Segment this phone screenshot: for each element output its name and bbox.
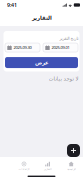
button[interactable]: 2025-09-30 <box>5 43 40 52</box>
button[interactable]: الرئيسية <box>59 159 83 173</box>
staticText: 9:41 <box>7 1 17 9</box>
staticText: لا توجد بيانات <box>48 75 78 82</box>
staticText: 2025-09-01 <box>51 45 69 50</box>
staticText: 2025-09-30 <box>13 45 31 50</box>
staticText: عرض <box>34 59 48 66</box>
staticText: الرئيسية <box>67 168 76 171</box>
staticText: التقارير <box>31 15 51 21</box>
staticText: التقارير <box>44 168 52 171</box>
button[interactable]: التقارير <box>36 159 59 173</box>
button[interactable]: Add <box>67 144 80 157</box>
button[interactable]: 2025-09-01 <box>43 43 78 52</box>
staticText: الإعدادات <box>18 168 30 171</box>
staticText: تاريخ التقرير <box>59 36 78 40</box>
button[interactable]: الإعدادات <box>12 159 36 173</box>
button[interactable]: عرض <box>5 57 78 68</box>
